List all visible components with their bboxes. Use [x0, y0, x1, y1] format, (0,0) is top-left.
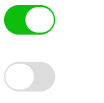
button[interactable]: Switch, off: [4, 62, 55, 91]
button[interactable]: Switch, on: [4, 5, 55, 35]
